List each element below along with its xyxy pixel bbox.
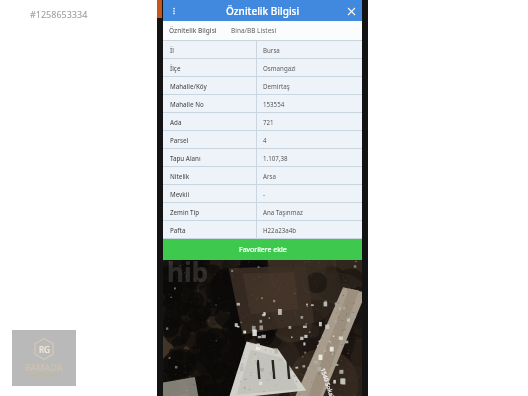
button[interactable]: More options <box>167 4 181 18</box>
button[interactable]: Mevkii <box>163 185 362 202</box>
staticText: Bursa <box>263 46 280 54</box>
button[interactable]: Tapu Alanı <box>163 149 362 166</box>
button[interactable]: Öznitelik Bilgisi <box>163 21 223 40</box>
staticText: Bina/BB Listesi <box>231 26 277 35</box>
staticText: Favorilere ekle <box>239 245 287 255</box>
staticText: Öznitelik Bilgisi <box>226 4 300 18</box>
button[interactable]: Mahalle/Köy <box>163 77 362 94</box>
staticText: Arsa <box>263 172 276 180</box>
staticText: Pafta <box>170 226 186 234</box>
button[interactable]: Parsel <box>163 131 362 148</box>
staticText: H22a23a4b <box>263 226 297 234</box>
button[interactable]: Nitelik <box>163 167 362 184</box>
staticText: Zemin Tip <box>170 208 200 216</box>
staticText: Ana Taşınmaz <box>263 208 303 216</box>
staticText: Öznitelik Bilgisi <box>169 26 217 35</box>
staticText: Mahalle/Köy <box>170 82 207 90</box>
button[interactable]: Ada <box>163 113 362 130</box>
staticText: RG <box>39 344 50 355</box>
button[interactable]: Zemin Tip <box>163 203 362 220</box>
staticText: Mahalle No <box>170 100 204 108</box>
staticText: Parsel <box>170 136 189 144</box>
staticText: Demirtaş <box>263 82 290 90</box>
button[interactable]: Bina/BB Listesi <box>223 21 285 40</box>
staticText: Osmangazi <box>263 64 296 72</box>
button[interactable]: İlçe <box>163 59 362 76</box>
button[interactable]: Close <box>344 4 358 18</box>
staticText: #1258653334 <box>30 8 88 20</box>
button[interactable]: Mahalle No <box>163 95 362 112</box>
button[interactable]: Pafta <box>163 221 362 238</box>
staticText: Ada <box>170 118 182 126</box>
staticText: - <box>263 190 265 198</box>
staticText: İlçe <box>170 64 181 72</box>
button[interactable]: Favorilere ekle <box>163 239 362 260</box>
staticText: 721 <box>263 118 274 126</box>
staticText: İl <box>170 46 174 54</box>
staticText: 153554 <box>263 100 285 108</box>
staticText: Nitelik <box>170 172 190 180</box>
staticText: 1.107,38 <box>263 154 288 162</box>
staticText: Mevkii <box>170 190 190 198</box>
staticText: RAMADA <box>25 361 63 373</box>
staticText: Tapu Alanı <box>170 154 201 162</box>
staticText: GAYRİMENKUL <box>30 373 58 378</box>
button[interactable]: İl <box>163 41 362 58</box>
staticText: 4 <box>263 136 267 144</box>
staticText: 1540 Sokak <box>319 367 336 396</box>
staticText: hib <box>167 260 209 289</box>
